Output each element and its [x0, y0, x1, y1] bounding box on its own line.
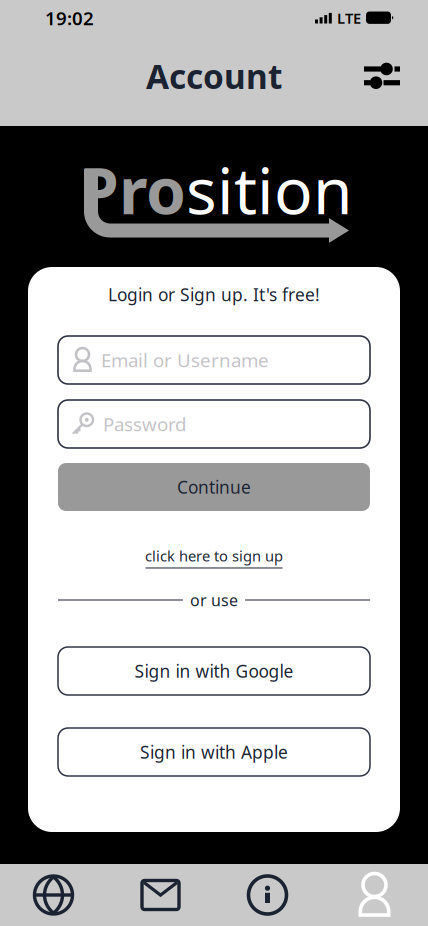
- button[interactable]: Settings: [354, 48, 410, 104]
- staticText: Continue: [177, 475, 251, 498]
- staticText: Email or Username: [101, 348, 269, 372]
- staticText: or use: [190, 589, 238, 611]
- button[interactable]: Continue: [58, 463, 370, 511]
- staticText: Account: [146, 54, 282, 98]
- button[interactable]: Sign in with Google: [58, 647, 370, 695]
- button[interactable]: Explore: [0, 864, 107, 926]
- button[interactable]: Info: [214, 864, 321, 926]
- staticText: Login or Sign up. It's free!: [108, 283, 320, 306]
- button[interactable]: Account: [321, 864, 428, 926]
- staticText: 19:02: [45, 6, 94, 30]
- staticText: Sign in with Google: [134, 659, 293, 682]
- button[interactable]: Messages: [107, 864, 214, 926]
- button[interactable]: Sign in with Apple: [58, 728, 370, 776]
- staticText: sition: [186, 147, 353, 232]
- staticText: Pro: [79, 147, 186, 232]
- staticText: Sign in with Apple: [140, 740, 288, 763]
- staticText: click here to sign up: [145, 546, 283, 565]
- staticText: Password: [103, 412, 186, 436]
- button[interactable]: click here to sign up: [143, 543, 285, 571]
- staticText: LTE: [337, 8, 361, 28]
